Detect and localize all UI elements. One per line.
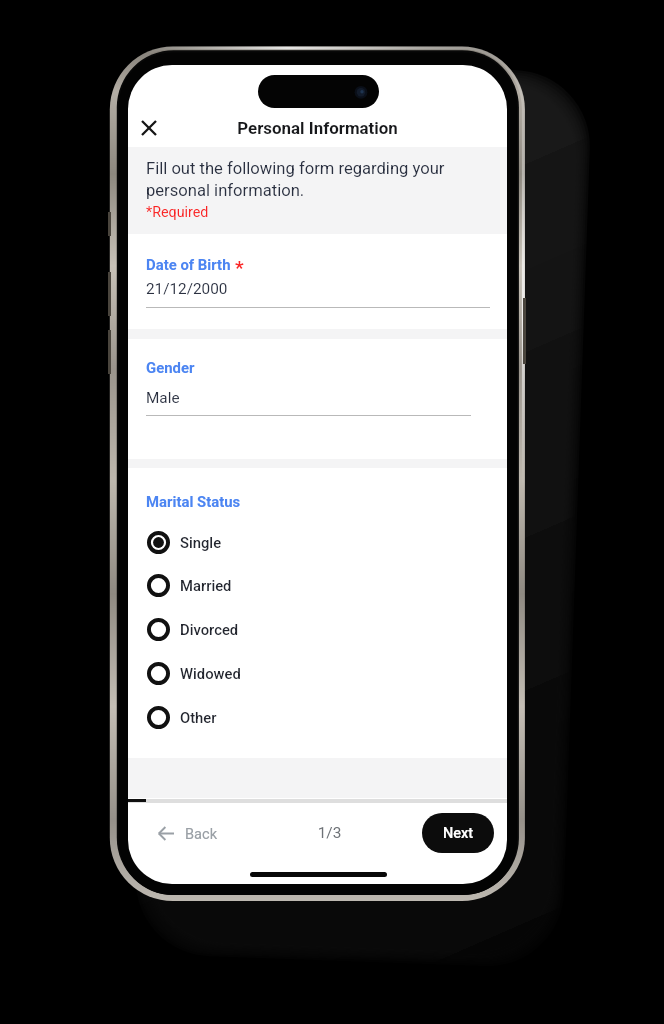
staticText: Marital Status — [146, 493, 241, 510]
staticText: Back — [185, 825, 218, 842]
button[interactable]: Widowed — [147, 652, 347, 694]
staticText: Married — [180, 577, 232, 594]
staticText: 21/12/2000 — [146, 280, 228, 298]
staticText: Date of Birth — [146, 256, 231, 273]
staticText: Male — [146, 389, 180, 407]
button[interactable]: Gender — [146, 354, 471, 417]
staticText: Single — [180, 534, 222, 551]
staticText: Gender — [146, 359, 195, 376]
staticText: Widowed — [180, 665, 241, 682]
button[interactable]: Back — [158, 814, 218, 852]
button[interactable]: Next — [422, 813, 494, 853]
staticText: *Required — [146, 204, 209, 221]
button[interactable]: Other — [147, 696, 347, 738]
staticText: Personal Information — [128, 118, 507, 138]
staticText: Next — [443, 825, 474, 842]
button[interactable]: Divorced — [147, 608, 347, 650]
button[interactable]: Single — [147, 521, 347, 563]
button[interactable]: Married — [147, 564, 347, 606]
staticText: 1/3 — [140, 824, 507, 842]
staticText: Fill out the following form regarding yo… — [146, 159, 486, 200]
button[interactable]: Close — [131, 110, 167, 146]
button[interactable]: Date of Birth — [146, 251, 490, 313]
staticText: Divorced — [180, 621, 239, 638]
staticText: * — [235, 256, 244, 278]
staticText: Other — [180, 709, 217, 726]
